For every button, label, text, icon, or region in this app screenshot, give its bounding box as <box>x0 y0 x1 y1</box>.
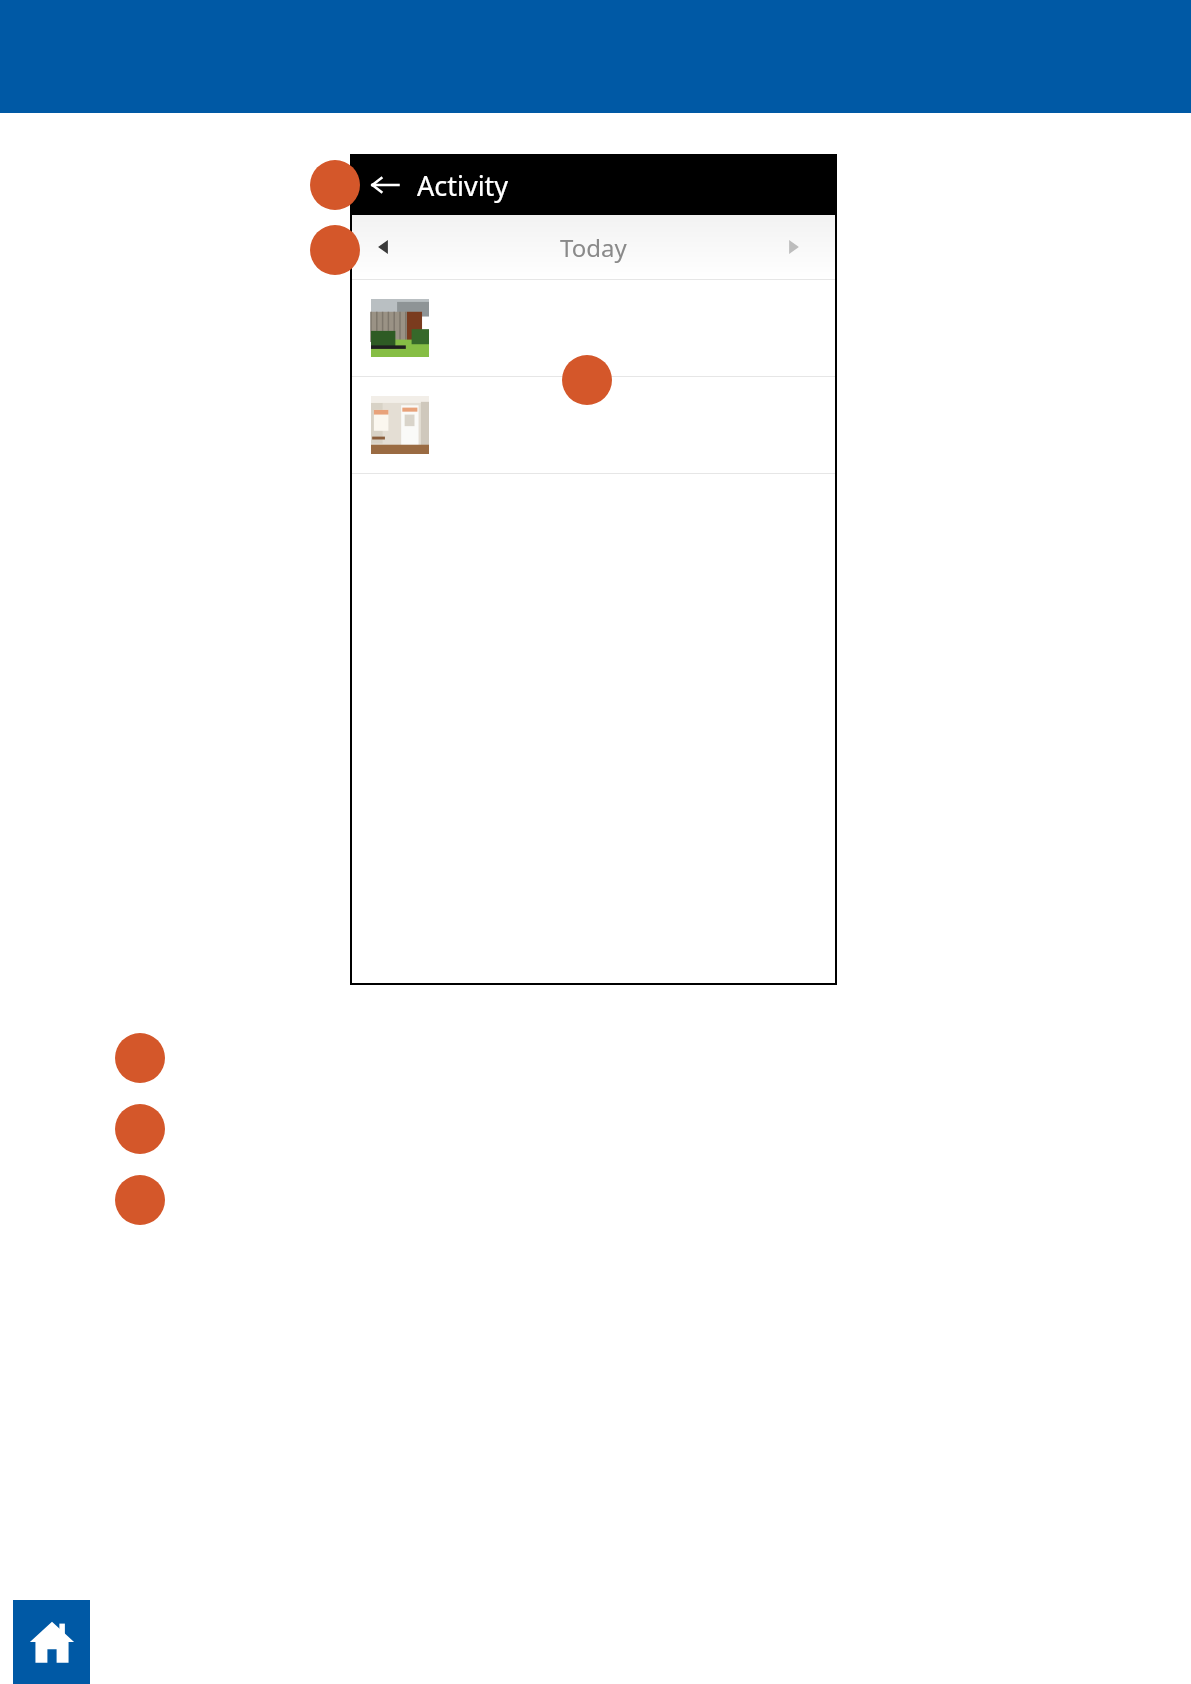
button[interactable]: Next day <box>770 223 818 271</box>
button[interactable]: Home <box>13 1600 90 1684</box>
button[interactable]: Back <box>361 161 409 209</box>
button[interactable]: Motion Detected <box>351 280 836 376</box>
button[interactable]: Motion Detected <box>351 377 836 473</box>
staticText: Activity <box>417 167 509 204</box>
staticText: Today <box>560 231 627 264</box>
button[interactable]: Previous day <box>359 223 407 271</box>
